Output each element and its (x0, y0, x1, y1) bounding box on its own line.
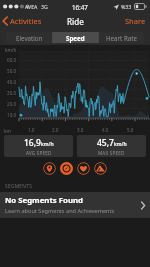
staticText: 1.0 (28, 127, 35, 133)
staticText: 3.0 (77, 127, 84, 133)
staticText: AVEA (25, 3, 38, 10)
staticText: 40.0 (7, 79, 17, 85)
staticText: 16,9 (24, 137, 41, 149)
staticText: 4.0 (102, 127, 109, 133)
staticText: 20.0 (7, 101, 17, 107)
button[interactable]: Speed (53, 32, 98, 43)
staticText: Share (125, 16, 146, 26)
button[interactable]: Share (121, 14, 150, 28)
staticText: km (4, 128, 11, 134)
staticText: AVG SPEED (26, 150, 52, 156)
staticText: 10.0 (7, 112, 17, 118)
staticText: Learn about Segments and Achievements (5, 207, 115, 215)
staticText: 16:47 (72, 3, 88, 11)
button[interactable]: Heart Rate (77, 162, 90, 175)
staticText: km/h (114, 141, 127, 148)
button[interactable]: Activities (0, 14, 46, 28)
button[interactable]: Elevation (43, 162, 56, 175)
staticText: SEGMENTS (5, 183, 33, 190)
staticText: Heart Rate (106, 34, 137, 42)
staticText: 2.0 (52, 127, 59, 133)
button[interactable]: Power (94, 162, 107, 175)
button[interactable]: 16,9 (4, 135, 73, 157)
button[interactable]: Elevation (6, 32, 52, 43)
staticText: %33 (121, 3, 132, 10)
staticText: 5.0 (127, 127, 134, 133)
staticText: km/h (5, 47, 17, 53)
staticText: 3G (41, 3, 48, 10)
staticText: Elevation (16, 34, 43, 42)
staticText: Speed (66, 34, 85, 42)
staticText: 50.0 (7, 68, 17, 74)
staticText: MAX SPEED (98, 150, 125, 156)
staticText: 60.0 (7, 57, 17, 63)
staticText: 30.0 (7, 90, 17, 96)
staticText: km/h (41, 141, 54, 148)
staticText: 45,7 (97, 137, 114, 149)
staticText: Activities (10, 16, 42, 26)
button[interactable]: Heart Rate (99, 32, 144, 43)
button[interactable]: 45,7 (77, 135, 146, 157)
staticText: No Segments Found (5, 195, 83, 206)
staticText: Ride (67, 16, 84, 27)
button[interactable]: No Segments Found (0, 192, 150, 218)
button[interactable]: Speed (60, 162, 73, 175)
